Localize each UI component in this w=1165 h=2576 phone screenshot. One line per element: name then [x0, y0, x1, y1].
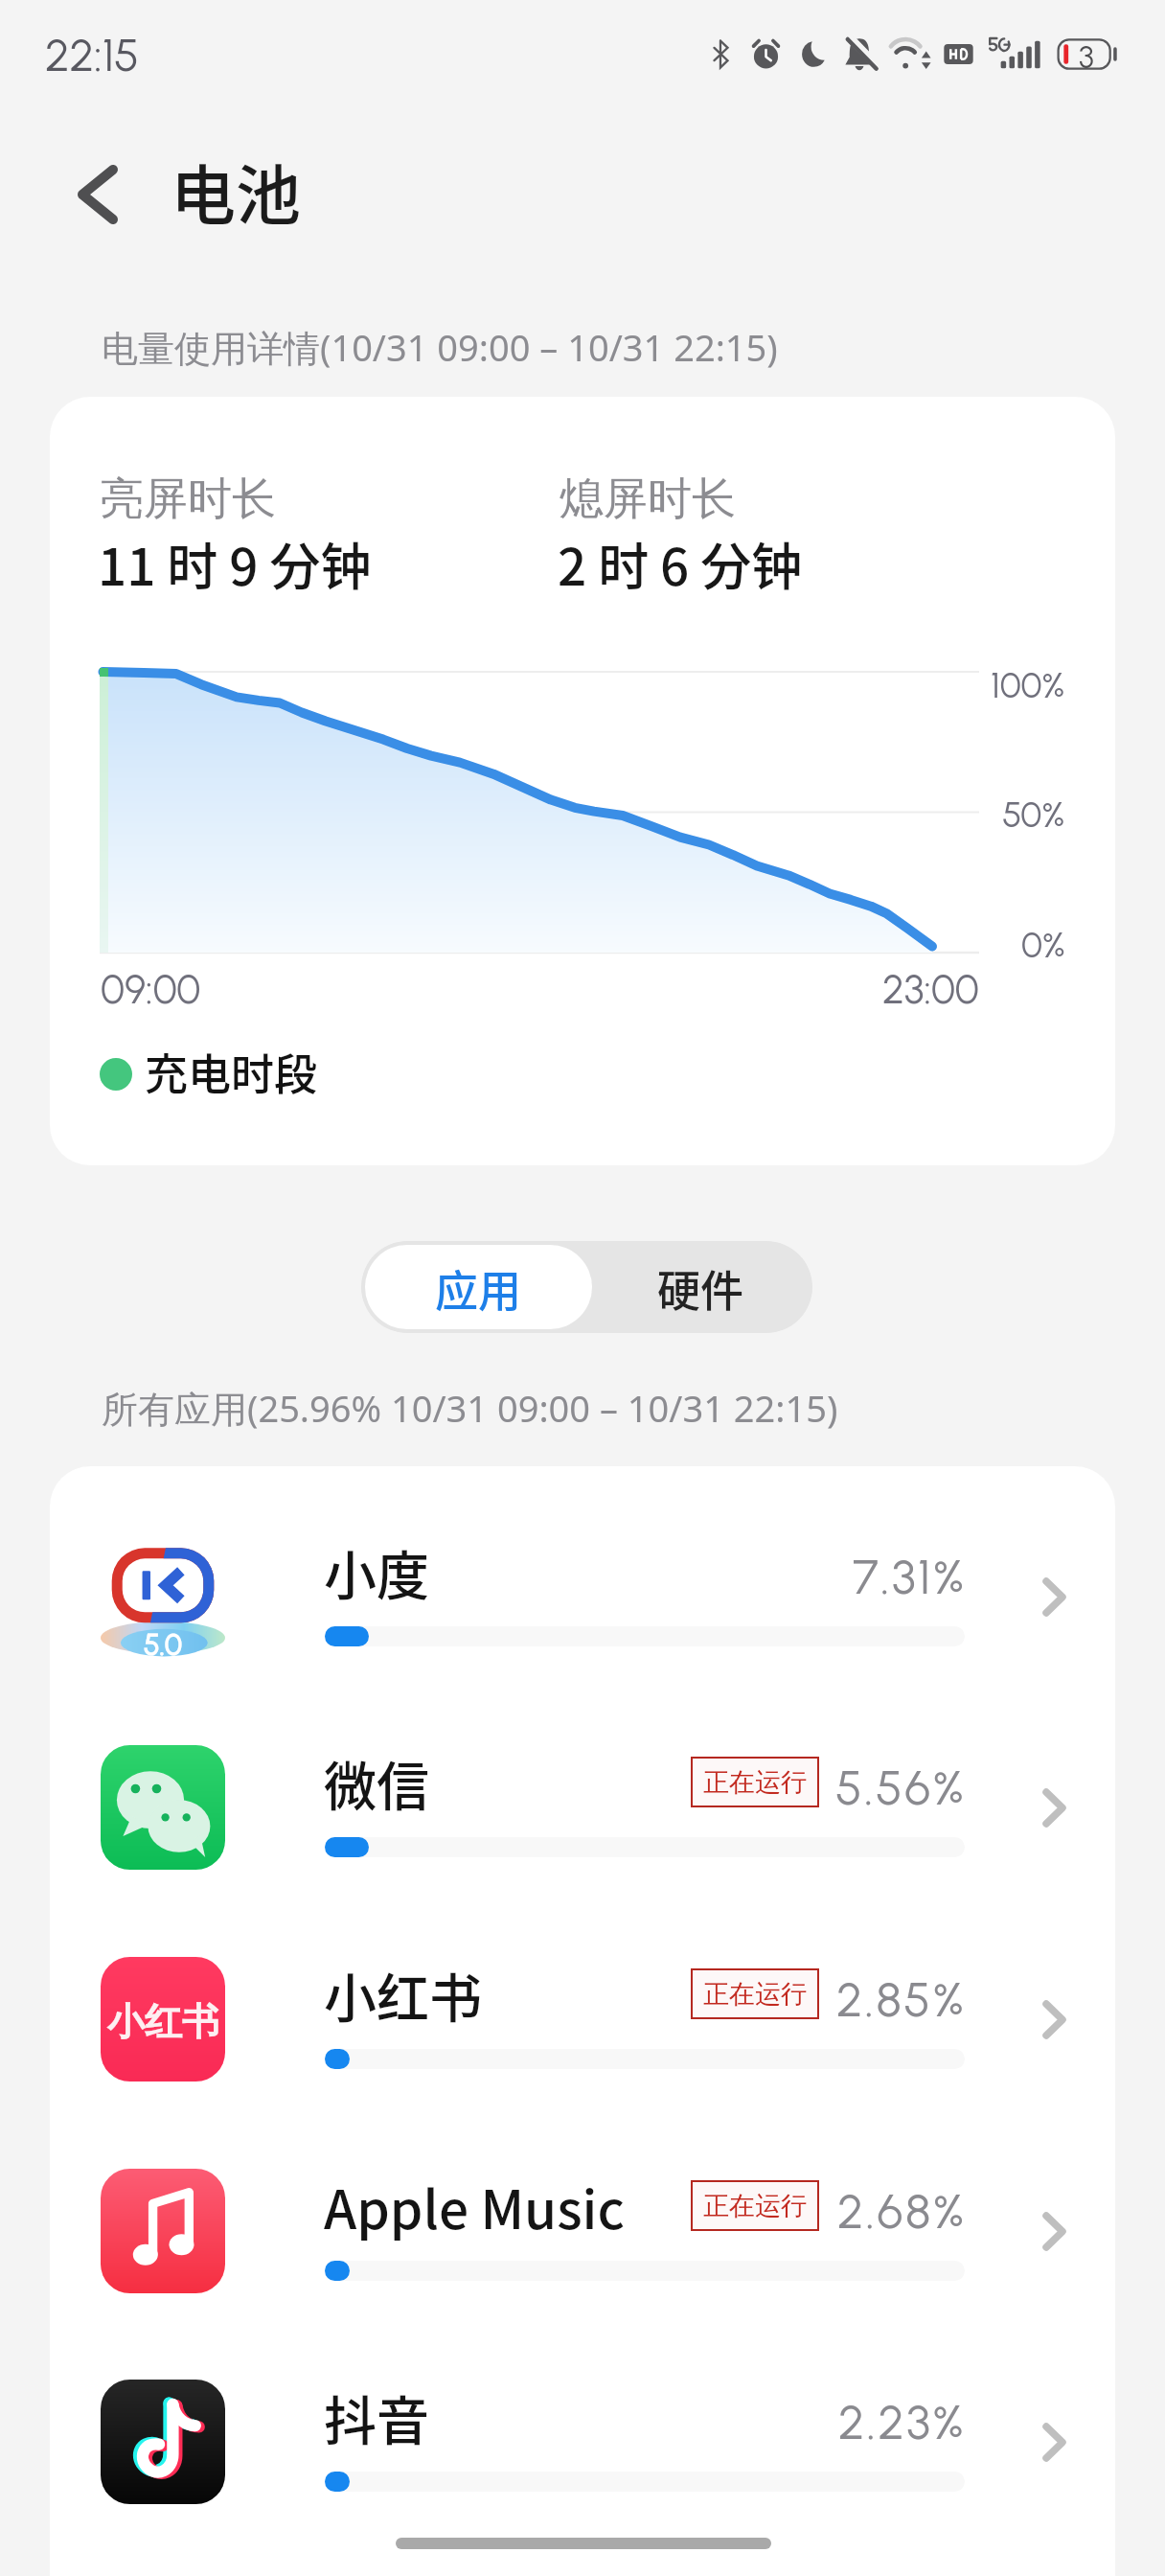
staticText: 电量使用详情(10/31 09:00 – 10/31 22:15)	[102, 322, 778, 372]
staticText: 正在运行	[703, 1766, 807, 1799]
button[interactable]: 应用	[365, 1245, 592, 1329]
staticText: Apple Music	[324, 2168, 625, 2244]
staticText: 正在运行	[703, 1978, 807, 2011]
staticText: 2.23%	[838, 2393, 967, 2450]
staticText: 亮屏时长	[100, 471, 276, 527]
button[interactable]: 小红书	[50, 1942, 1115, 2133]
staticText: 50%	[1002, 793, 1065, 836]
staticText: 小度	[324, 1533, 430, 1610]
staticText: 充电时段	[145, 1041, 318, 1103]
button[interactable]: 硬件	[592, 1245, 809, 1329]
staticText: 所有应用(25.96% 10/31 09:00 – 10/31 22:15)	[102, 1383, 838, 1433]
staticText: 应用	[435, 1257, 522, 1320]
staticText: 11 时 9 分钟	[98, 527, 372, 601]
other: Open 抖音	[1018, 2406, 1089, 2477]
button[interactable]: Apple Music	[50, 2153, 1115, 2345]
staticText: 微信	[324, 1744, 430, 1821]
staticText: 小红书	[107, 1998, 219, 2045]
staticText: 2 时 6 分钟	[558, 527, 803, 601]
staticText: 22:15	[45, 28, 140, 81]
staticText: 3	[1079, 39, 1094, 76]
staticText: 0%	[1021, 924, 1065, 966]
staticText: 23:00	[882, 965, 979, 1013]
button[interactable]: 微信	[50, 1730, 1115, 1921]
staticText: 硬件	[657, 1257, 744, 1320]
staticText: 2.68%	[837, 2182, 967, 2240]
other: Open 小红书	[1018, 1984, 1089, 2055]
other: Open 微信	[1018, 1772, 1089, 1843]
other: Open Apple Music	[1018, 2196, 1089, 2266]
staticText: 5.0	[144, 1627, 182, 1662]
staticText: 09:00	[101, 965, 201, 1013]
button[interactable]: Back	[59, 156, 136, 233]
staticText: 2.85%	[836, 1970, 967, 2028]
staticText: 抖音	[324, 2379, 430, 2455]
staticText: 熄屏时长	[560, 471, 736, 527]
button[interactable]: 抖音	[50, 2364, 1115, 2556]
staticText: 5.56%	[835, 1759, 967, 1816]
staticText: 7.31%	[853, 1548, 967, 1605]
staticText: 正在运行	[703, 2190, 807, 2222]
staticText: 100%	[991, 664, 1065, 706]
staticText: 小红书	[324, 1956, 483, 2033]
button[interactable]: 5.0	[50, 1519, 1115, 1711]
staticText: 电池	[171, 144, 302, 238]
other: Open 小度	[1018, 1561, 1089, 1632]
